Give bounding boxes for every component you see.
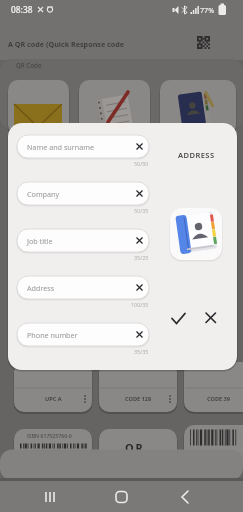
button[interactable] <box>129 229 149 252</box>
staticText: Job title <box>27 236 53 246</box>
button[interactable] <box>129 323 149 346</box>
staticText: CODE 128 <box>125 395 152 403</box>
button[interactable] <box>34 483 66 511</box>
staticText: 50/35 <box>134 207 149 214</box>
staticText: ADDRESS <box>178 150 215 160</box>
button[interactable] <box>169 483 201 511</box>
button[interactable] <box>170 208 222 260</box>
button[interactable] <box>17 229 129 252</box>
staticText: 08:38 <box>11 4 33 15</box>
button[interactable] <box>129 182 149 205</box>
staticText: QR <box>125 440 145 455</box>
button[interactable] <box>166 307 190 331</box>
staticText: ISBN 617525766-0 <box>27 432 72 439</box>
button[interactable] <box>17 135 129 158</box>
button[interactable] <box>17 323 129 346</box>
button[interactable] <box>17 276 129 299</box>
staticText: 50/50 <box>134 160 149 167</box>
staticText: 35/25 <box>134 254 149 261</box>
staticText: QR Code <box>16 61 42 69</box>
staticText: UPC A <box>45 395 62 403</box>
button[interactable] <box>129 135 149 158</box>
staticText: 77% <box>200 5 215 15</box>
staticText: Phone number <box>27 330 78 340</box>
button[interactable] <box>129 276 149 299</box>
button[interactable] <box>17 182 129 205</box>
staticText: A QR code (Quick Response code <box>8 39 125 49</box>
staticText: 100/35 <box>131 301 149 308</box>
button[interactable] <box>106 483 138 511</box>
staticText: Name and surname <box>27 142 95 152</box>
button[interactable] <box>199 307 223 331</box>
button[interactable] <box>192 31 214 53</box>
staticText: CODE 39 <box>207 395 230 403</box>
staticText: Address <box>27 283 55 293</box>
staticText: Company <box>27 189 60 199</box>
staticText: 35/35 <box>134 348 149 355</box>
